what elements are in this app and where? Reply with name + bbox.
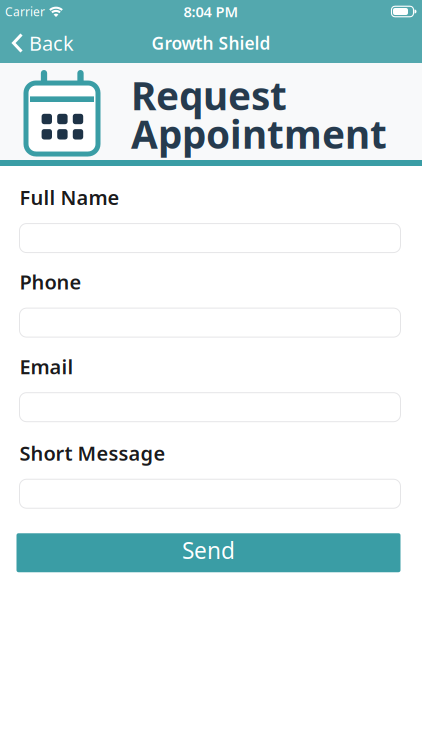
staticText: Phone (19, 269, 81, 295)
button[interactable]: Send (16, 533, 400, 572)
staticText: Request (131, 69, 287, 121)
staticText: Short Message (19, 440, 165, 466)
button[interactable]: Back (12, 30, 74, 56)
button[interactable]: Phone text field (19, 308, 400, 337)
staticText: Back (29, 30, 74, 56)
button[interactable]: Short Message text field (19, 479, 400, 508)
button[interactable]: Email text field (19, 393, 400, 422)
staticText: Growth Shield (151, 31, 270, 54)
staticText: Appointment (131, 108, 387, 159)
staticText: Send (182, 535, 235, 565)
staticText: 8:04 PM (183, 2, 238, 21)
staticText: Carrier (5, 3, 45, 19)
button[interactable]: Full Name text field (19, 224, 400, 253)
staticText: Email (19, 353, 73, 380)
staticText: Full Name (19, 184, 119, 211)
